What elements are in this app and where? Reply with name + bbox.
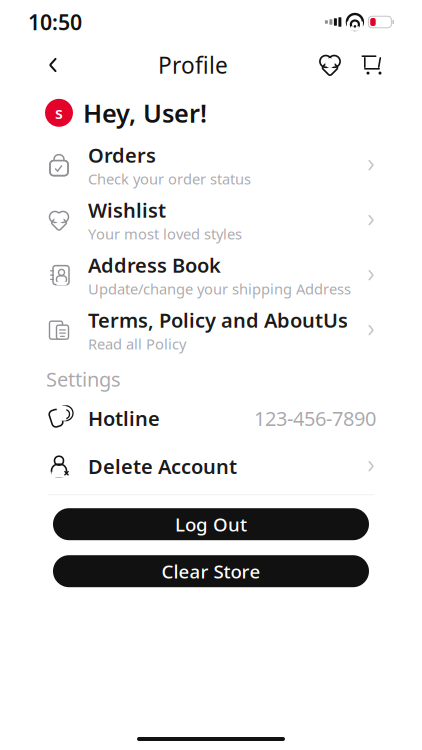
button[interactable]: Orders — [0, 138, 422, 193]
staticText: Wishlist — [88, 197, 166, 223]
staticText: Log Out — [175, 512, 247, 537]
staticText: Your most loved styles — [88, 224, 242, 244]
button[interactable]: Hotline — [0, 396, 422, 440]
button[interactable]: Delete Account — [0, 444, 422, 488]
staticText: 10:50 — [28, 8, 82, 36]
staticText: 123-456-7890 — [254, 405, 376, 431]
staticText: Read all Policy — [88, 334, 186, 354]
staticText: Address Book — [88, 252, 221, 278]
button[interactable]: Wishlist — [316, 51, 344, 79]
button[interactable]: Terms, Policy and AboutUs — [0, 303, 422, 358]
button[interactable]: Clear Store — [53, 555, 369, 587]
staticText: Update/change your shipping Address — [88, 279, 351, 299]
staticText: s — [55, 102, 63, 123]
staticText: Delete Account — [88, 453, 237, 479]
staticText: Check your order status — [88, 169, 251, 189]
staticText: Hey, User! — [83, 96, 207, 130]
staticText: Orders — [88, 142, 156, 168]
staticText: Terms, Policy and AboutUs — [88, 307, 348, 333]
staticText: Profile — [158, 50, 228, 80]
staticText: Clear Store — [161, 559, 260, 584]
staticText: Settings — [46, 366, 121, 392]
button[interactable]: Log Out — [53, 508, 369, 540]
staticText: Hotline — [88, 405, 160, 431]
button[interactable]: Address Book — [0, 248, 422, 303]
button[interactable]: Back — [36, 48, 70, 82]
button[interactable]: Cart — [358, 51, 386, 79]
button[interactable]: Wishlist — [0, 193, 422, 248]
